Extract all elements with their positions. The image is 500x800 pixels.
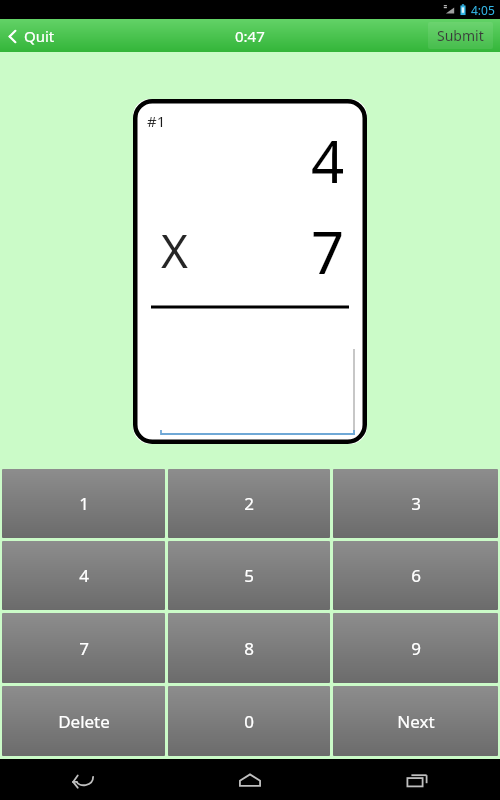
staticText: 4 — [79, 564, 89, 587]
staticText: 1 — [79, 492, 89, 515]
button[interactable]: Recent apps — [387, 759, 447, 800]
button[interactable]: 6 — [333, 541, 498, 610]
button[interactable]: 1 — [2, 469, 165, 538]
staticText: 4 — [311, 121, 345, 200]
button[interactable]: 4 — [2, 541, 165, 610]
button[interactable]: 7 — [2, 613, 165, 683]
staticText: 4:05 — [471, 2, 495, 18]
staticText: #1 — [147, 111, 166, 131]
staticText: Submit — [437, 26, 484, 45]
button[interactable]: Next — [333, 686, 498, 756]
button[interactable]: 2 — [168, 469, 330, 538]
staticText: 2 — [244, 492, 254, 515]
staticText: Next — [397, 710, 435, 733]
button[interactable]: Delete — [2, 686, 165, 756]
button[interactable]: 5 — [168, 541, 330, 610]
staticText: 7 — [311, 212, 345, 291]
staticText: 7 — [79, 637, 89, 660]
staticText: 0:47 — [235, 26, 265, 46]
button[interactable]: #1 — [133, 99, 367, 444]
staticText: X — [161, 219, 188, 282]
staticText: Quit — [24, 26, 55, 46]
button[interactable]: Back — [53, 759, 113, 800]
button[interactable]: 9 — [333, 613, 498, 683]
button[interactable]: 0 — [168, 686, 330, 756]
staticText: 6 — [411, 564, 421, 587]
button[interactable]: Home — [220, 759, 280, 800]
button[interactable]: 8 — [168, 613, 330, 683]
button[interactable]: 3 — [333, 469, 498, 538]
staticText: Delete — [58, 710, 110, 733]
staticText: 0 — [244, 710, 254, 733]
staticText: 8 — [244, 637, 254, 660]
staticText: 5 — [244, 564, 254, 587]
staticText: 3 — [411, 492, 421, 515]
button[interactable]: Submit — [428, 22, 493, 49]
staticText: 9 — [411, 637, 421, 660]
button[interactable] — [262, 349, 355, 435]
button[interactable]: Quit — [0, 22, 65, 50]
